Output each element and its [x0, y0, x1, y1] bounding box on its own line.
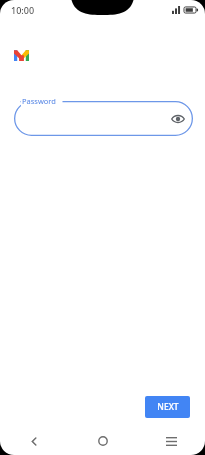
button[interactable]: NEXT — [145, 396, 190, 418]
staticText: 10:00 — [11, 4, 35, 16]
button[interactable]: Show password — [14, 101, 193, 136]
button[interactable]: Home — [69, 427, 137, 455]
button[interactable]: Recent apps — [137, 427, 205, 455]
staticText: NEXT — [157, 401, 179, 413]
staticText: Password — [22, 96, 56, 106]
button[interactable]: Back — [0, 427, 69, 455]
button[interactable]: Show password — [169, 110, 186, 127]
